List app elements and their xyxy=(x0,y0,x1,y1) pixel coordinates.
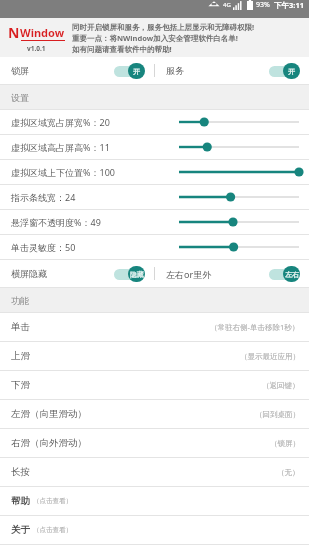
staticText: 开 xyxy=(288,67,295,76)
staticText: 左右or里外 xyxy=(166,268,212,280)
staticText: 隐藏 xyxy=(130,270,144,279)
staticText: 如有问题请查看软件中的帮助! xyxy=(72,44,172,54)
staticText: 虚拟区域宽占屏宽%：20 xyxy=(11,116,110,128)
staticText: 横屏隐藏 xyxy=(11,268,47,279)
staticText: 悬浮窗不透明度%：49 xyxy=(11,216,101,228)
button[interactable]: 悬浮窗不透明度%：49 xyxy=(0,210,309,234)
staticText: v1.0.1 xyxy=(27,44,46,53)
button[interactable]: 长按 xyxy=(0,458,309,486)
staticText: 锁屏 xyxy=(11,65,29,76)
staticText: N xyxy=(8,23,20,42)
button[interactable]: 下滑 xyxy=(0,371,309,399)
staticText: （无） xyxy=(277,468,300,477)
staticText: 服务 xyxy=(166,65,184,76)
staticText: 下滑 xyxy=(11,379,30,391)
staticText: 单击 xyxy=(11,321,30,333)
staticText: （返回键） xyxy=(262,381,300,390)
staticText: 关于 xyxy=(11,524,30,536)
staticText: 重要一点：将NWindow加入安全管理软件白名单! xyxy=(72,33,238,43)
staticText: 同时开启锁屏和服务，服务包括上层显示和无障碍权限! xyxy=(72,22,255,32)
staticText: 93% xyxy=(256,0,270,10)
staticText: （点击查看） xyxy=(33,497,72,505)
staticText: 开 xyxy=(133,67,140,76)
button[interactable]: 锁屏 xyxy=(0,57,154,84)
button[interactable]: 横屏隐藏 xyxy=(0,260,154,287)
button[interactable]: 帮助 xyxy=(0,487,309,515)
staticText: 帮助 xyxy=(11,495,30,507)
staticText: 左滑（向里滑动） xyxy=(11,408,87,420)
staticText: Window xyxy=(20,25,65,40)
button[interactable]: 左滑（向里滑动） xyxy=(0,400,309,428)
staticText: 指示条线宽：24 xyxy=(11,191,76,203)
staticText: 左右 xyxy=(285,270,299,279)
staticText: （显示最近应用） xyxy=(240,352,300,361)
staticText: 长按 xyxy=(11,466,30,478)
staticText: 下午3:11 xyxy=(274,0,304,10)
staticText: （点击查看） xyxy=(33,526,72,534)
button[interactable]: 上滑 xyxy=(0,342,309,370)
button[interactable]: 右滑（向外滑动） xyxy=(0,429,309,457)
staticText: 设置 xyxy=(11,92,29,103)
staticText: （常驻右侧-单击移除1秒） xyxy=(210,322,300,332)
button[interactable]: 单击灵敏度：50 xyxy=(0,235,309,259)
staticText: 虚拟区域高占屏高%：11 xyxy=(11,141,110,153)
staticText: 上滑 xyxy=(11,350,30,362)
button[interactable]: 单击 xyxy=(0,313,309,341)
staticText: 4G xyxy=(223,1,231,9)
staticText: 虚拟区域上下位置%：100 xyxy=(11,166,115,178)
staticText: （回到桌面） xyxy=(255,410,300,419)
staticText: 功能 xyxy=(11,295,29,306)
button[interactable]: 虚拟区域高占屏高%：11 xyxy=(0,135,309,159)
button[interactable]: 虚拟区域宽占屏宽%：20 xyxy=(0,110,309,134)
button[interactable]: 服务 xyxy=(155,57,309,84)
staticText: 右滑（向外滑动） xyxy=(11,437,87,449)
button[interactable]: 虚拟区域上下位置%：100 xyxy=(0,160,309,184)
button[interactable]: 左右or里外 xyxy=(155,260,309,287)
button[interactable]: 指示条线宽：24 xyxy=(0,185,309,209)
button[interactable]: 关于 xyxy=(0,516,309,544)
staticText: （锁屏） xyxy=(270,439,300,448)
staticText: 单击灵敏度：50 xyxy=(11,241,76,253)
